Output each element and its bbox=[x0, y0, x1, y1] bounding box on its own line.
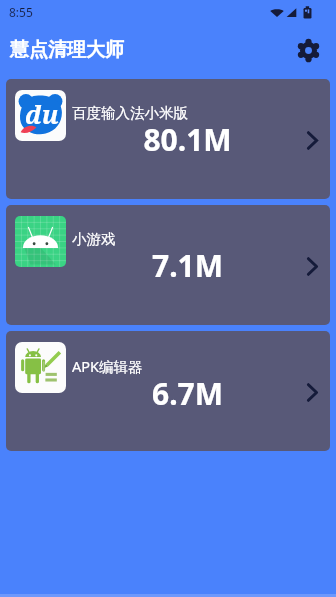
button[interactable]: Settings bbox=[293, 35, 323, 65]
staticText: 百度输入法小米版 bbox=[72, 104, 188, 122]
staticText: du bbox=[25, 97, 59, 131]
staticText: 7.1M bbox=[72, 245, 303, 286]
staticText: 6.7M bbox=[72, 373, 303, 414]
staticText: 80.1M bbox=[72, 119, 303, 160]
button[interactable]: du bbox=[6, 79, 330, 199]
staticText: 慧点清理大师 bbox=[10, 38, 124, 62]
staticText: APK编辑器 bbox=[72, 356, 143, 376]
staticText: 小游戏 bbox=[72, 230, 116, 248]
button[interactable]: 小游戏 bbox=[6, 205, 330, 325]
staticText: 8:55 bbox=[9, 4, 33, 20]
button[interactable]: APK编辑器 bbox=[6, 331, 330, 451]
